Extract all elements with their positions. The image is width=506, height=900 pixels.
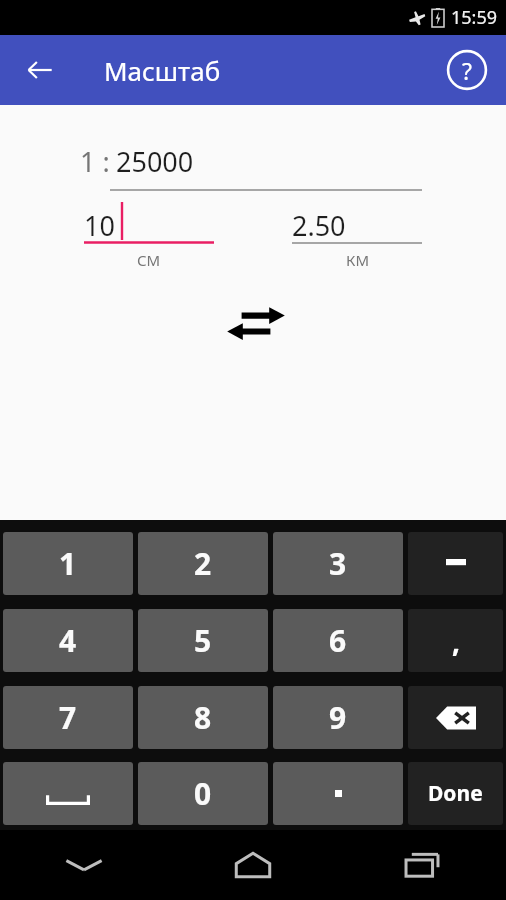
- staticText: СМ: [137, 250, 161, 270]
- staticText: 2.50: [292, 207, 346, 244]
- staticText: 7: [59, 697, 77, 738]
- staticText: 6: [329, 620, 347, 661]
- staticText: 10: [84, 207, 115, 244]
- button[interactable]: 6: [273, 609, 403, 672]
- staticText: 4: [59, 620, 77, 661]
- staticText: 8: [194, 697, 212, 738]
- button[interactable]: 3: [273, 532, 403, 595]
- button[interactable]: 0: [138, 762, 268, 825]
- staticText: 9: [329, 697, 347, 738]
- button[interactable]: 2: [138, 532, 268, 595]
- button[interactable]: 7: [3, 686, 133, 749]
- button[interactable]: Home: [225, 837, 281, 893]
- button[interactable]: Recent apps: [394, 837, 450, 893]
- staticText: 15:59: [451, 5, 498, 30]
- button[interactable]: [408, 686, 503, 749]
- button[interactable]: 1 :: [80, 143, 422, 191]
- staticText: КМ: [346, 250, 369, 270]
- staticText: 2: [194, 543, 212, 584]
- staticText: 1: [59, 543, 77, 584]
- button[interactable]: 8: [138, 686, 268, 749]
- staticText: Масштаб: [104, 53, 221, 88]
- staticText: 3: [329, 543, 347, 584]
- button[interactable]: Done: [408, 762, 503, 825]
- button[interactable]: [3, 762, 133, 825]
- button[interactable]: Back: [14, 44, 66, 96]
- button[interactable]: 10: [84, 202, 214, 244]
- staticText: 0: [194, 773, 212, 814]
- button[interactable]: ,: [408, 609, 503, 672]
- button[interactable]: Swap units: [226, 303, 286, 345]
- button[interactable]: 2.50: [292, 202, 422, 244]
- staticText: 25000: [116, 143, 194, 180]
- staticText: 5: [194, 620, 212, 661]
- button[interactable]: 9: [273, 686, 403, 749]
- button[interactable]: 5: [138, 609, 268, 672]
- staticText: ?: [462, 55, 472, 86]
- button[interactable]: [408, 532, 503, 595]
- button[interactable]: 1: [3, 532, 133, 595]
- button[interactable]: 4: [3, 609, 133, 672]
- button[interactable]: Help: [440, 43, 494, 97]
- staticText: ,: [452, 622, 460, 660]
- staticText: 1 :: [80, 143, 110, 180]
- button[interactable]: Hide keyboard: [56, 837, 112, 893]
- staticText: Done: [428, 779, 483, 808]
- button[interactable]: [273, 762, 403, 825]
